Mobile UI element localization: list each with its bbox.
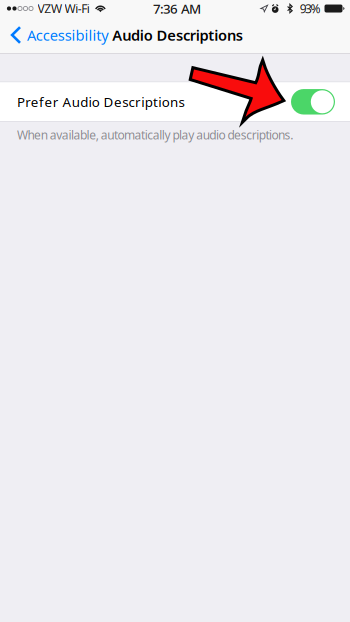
staticText: Accessibility — [27, 25, 108, 45]
staticText: Wi-Fi — [65, 0, 90, 16]
staticText: Audio Descriptions — [112, 25, 243, 45]
staticText: 7:36 — [153, 0, 178, 17]
staticText: When available, automatically play audio… — [17, 127, 293, 143]
button[interactable]: Accessibility — [0, 21, 108, 49]
staticText: VZW — [37, 0, 62, 16]
staticText: 93% — [300, 0, 320, 16]
staticText: AM — [181, 0, 201, 17]
staticText: Prefer Audio Descriptions — [17, 93, 184, 111]
button[interactable]: Prefer Audio Descriptions — [0, 82, 350, 121]
